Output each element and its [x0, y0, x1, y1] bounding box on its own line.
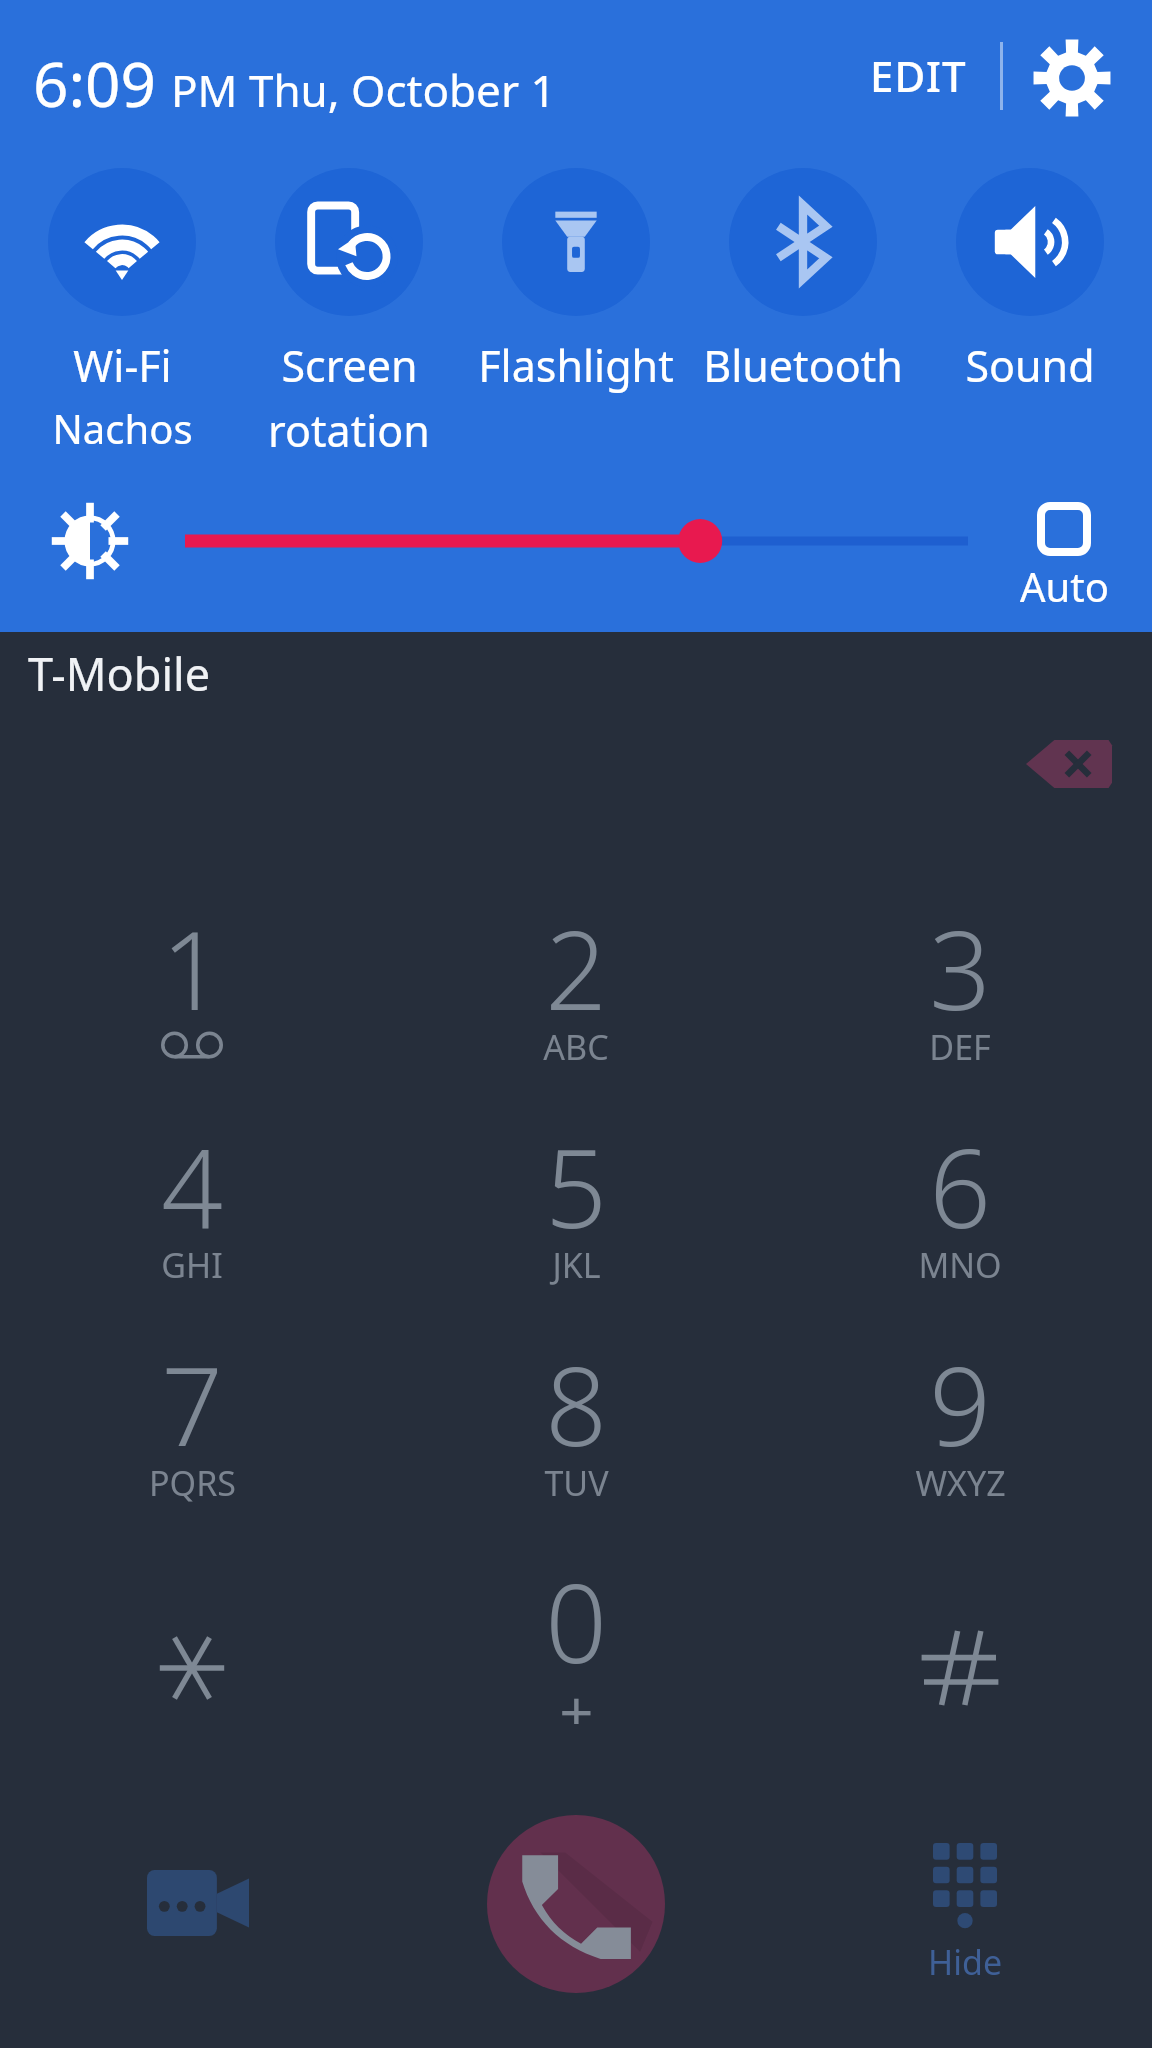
- button[interactable]: Brightness: [44, 495, 136, 587]
- button[interactable]: 7: [82, 1331, 302, 1531]
- staticText: Wi-Fi: [73, 336, 172, 395]
- staticText: Flashlight: [478, 336, 674, 395]
- button[interactable]: Wi-Fi: [7, 168, 237, 455]
- staticText: 1: [161, 895, 223, 1042]
- button[interactable]: 0: [466, 1548, 686, 1748]
- button[interactable]: Auto: [1000, 502, 1128, 613]
- staticText: 5: [545, 1113, 607, 1260]
- staticText: 6:09: [33, 41, 157, 125]
- staticText: 3: [929, 895, 991, 1042]
- staticText: 9: [929, 1331, 991, 1478]
- staticText: ABC: [543, 1024, 609, 1070]
- staticText: Sound: [965, 336, 1095, 395]
- staticText: 7: [161, 1331, 223, 1478]
- button[interactable]: Sound: [915, 168, 1145, 395]
- button[interactable]: Flashlight: [461, 168, 691, 395]
- staticText: JKL: [552, 1242, 601, 1288]
- staticText: PM Thu, October 1: [171, 60, 556, 120]
- staticText: PQRS: [149, 1460, 236, 1506]
- button[interactable]: Screen: [234, 168, 464, 460]
- button[interactable]: Video call: [122, 1838, 274, 1968]
- staticText: T-Mobile: [28, 643, 211, 704]
- button[interactable]: Settings: [1024, 30, 1120, 126]
- staticText: 8: [545, 1331, 607, 1478]
- button[interactable]: 8: [466, 1331, 686, 1531]
- button[interactable]: EDIT: [848, 32, 988, 118]
- staticText: Nachos: [52, 401, 193, 455]
- button[interactable]: 4: [82, 1113, 302, 1313]
- staticText: rotation: [268, 401, 430, 460]
- button[interactable]: 6: [850, 1113, 1070, 1313]
- button[interactable]: 3: [850, 895, 1070, 1095]
- button[interactable]: 1: [82, 895, 302, 1095]
- staticText: EDIT: [870, 47, 967, 104]
- staticText: Auto: [1020, 559, 1109, 613]
- staticText: 4: [161, 1113, 223, 1260]
- button[interactable]: 5: [466, 1113, 686, 1313]
- staticText: 0: [545, 1548, 607, 1695]
- button[interactable]: 9: [850, 1331, 1070, 1531]
- staticText: +: [559, 1671, 594, 1724]
- staticText: 6: [929, 1113, 991, 1260]
- button[interactable]: Call: [487, 1815, 665, 1993]
- staticText: GHI: [161, 1242, 223, 1288]
- button[interactable]: Bluetooth: [688, 168, 918, 395]
- button[interactable]: 2: [466, 895, 686, 1095]
- staticText: Bluetooth: [703, 336, 903, 395]
- staticText: WXYZ: [915, 1460, 1006, 1506]
- button[interactable]: [82, 1548, 302, 1748]
- button[interactable]: Backspace: [1026, 738, 1112, 790]
- staticText: DEF: [929, 1024, 991, 1070]
- button[interactable]: [850, 1548, 1070, 1748]
- staticText: MNO: [918, 1242, 1002, 1288]
- button[interactable]: Hide: [885, 1843, 1045, 1985]
- staticText: Hide: [928, 1939, 1003, 1985]
- staticText: 2: [545, 895, 607, 1042]
- staticText: Screen: [281, 336, 418, 395]
- staticText: TUV: [544, 1460, 609, 1506]
